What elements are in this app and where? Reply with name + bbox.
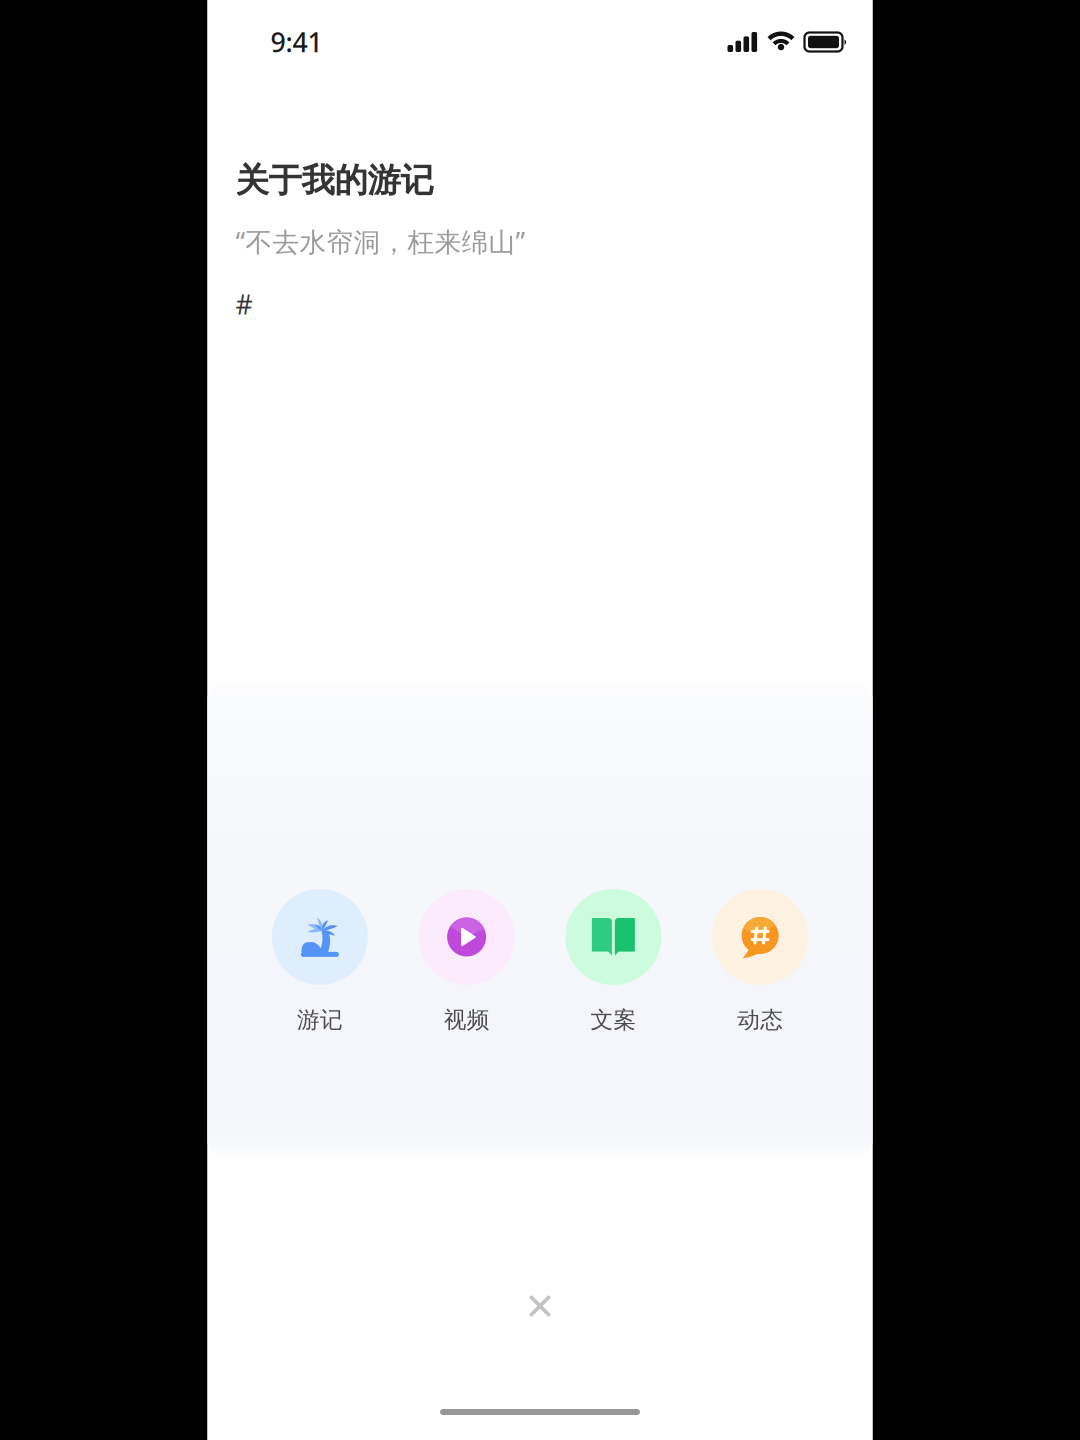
staticText: 文案: [590, 1006, 636, 1034]
staticText: 动态: [737, 1006, 783, 1034]
staticText: 关于我的游记: [235, 160, 433, 201]
staticText: 视频: [444, 1006, 490, 1034]
staticText: 游记: [297, 1006, 343, 1034]
button[interactable]: 游记: [246, 889, 393, 1039]
staticText: “不去水帘洞，枉来绵山”: [235, 224, 525, 259]
button[interactable]: 动态: [687, 889, 834, 1039]
staticText: 9:41: [270, 24, 322, 60]
button[interactable]: 文案: [540, 889, 687, 1039]
staticText: #: [235, 286, 252, 322]
button[interactable]: 视频: [393, 889, 540, 1039]
button[interactable]: Close: [501, 1267, 579, 1345]
